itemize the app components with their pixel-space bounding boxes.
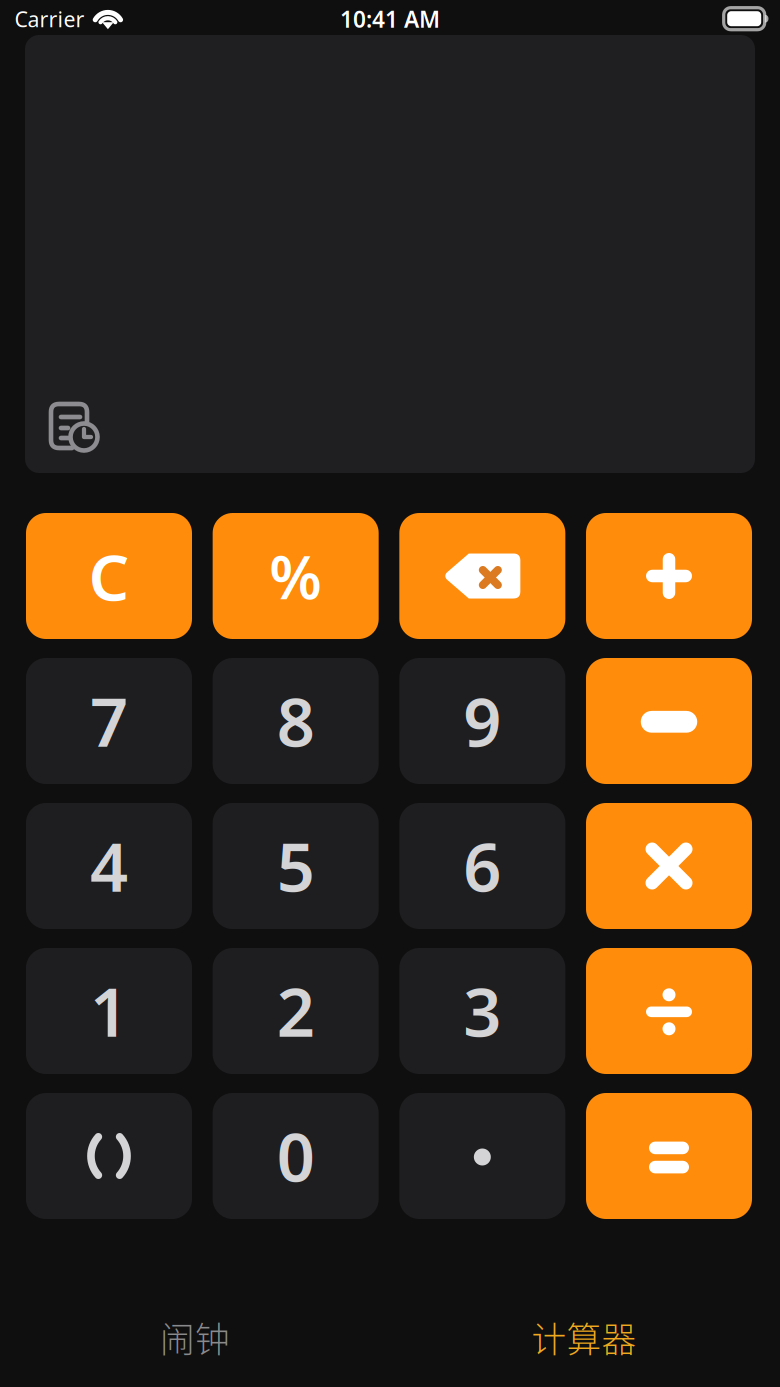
button[interactable]: History bbox=[40, 393, 108, 461]
button[interactable]: Equals bbox=[586, 1093, 752, 1219]
staticText: 2 bbox=[277, 967, 315, 1055]
button[interactable]: 5 bbox=[213, 803, 379, 929]
button[interactable]: 7 bbox=[26, 658, 192, 784]
button[interactable]: 3 bbox=[399, 948, 565, 1074]
staticText: 8 bbox=[277, 677, 315, 765]
button[interactable]: 闹钟 bbox=[0, 1282, 390, 1387]
staticText: 计算器 bbox=[531, 1312, 636, 1363]
staticText: 9 bbox=[463, 677, 501, 765]
button[interactable]: Decimal point bbox=[399, 1093, 565, 1219]
staticText: 5 bbox=[277, 822, 315, 910]
staticText: 3 bbox=[463, 967, 501, 1055]
staticText: 1 bbox=[90, 967, 128, 1055]
button[interactable]: Multiply bbox=[586, 803, 752, 929]
button[interactable]: Subtract bbox=[586, 658, 752, 784]
staticText: 4 bbox=[90, 822, 128, 910]
button[interactable]: Add bbox=[586, 513, 752, 639]
staticText: 0 bbox=[277, 1112, 315, 1200]
button[interactable]: Delete bbox=[399, 513, 565, 639]
button[interactable]: 9 bbox=[399, 658, 565, 784]
staticText: 10:41 AM bbox=[340, 4, 440, 34]
button[interactable]: Percent bbox=[213, 513, 379, 639]
button[interactable]: 6 bbox=[399, 803, 565, 929]
button[interactable]: 4 bbox=[26, 803, 192, 929]
button[interactable]: 1 bbox=[26, 948, 192, 1074]
staticText: Carrier bbox=[14, 5, 84, 33]
staticText: % bbox=[269, 536, 322, 616]
button[interactable]: 计算器 bbox=[389, 1282, 779, 1387]
staticText: 闹钟 bbox=[160, 1312, 230, 1363]
button[interactable]: 8 bbox=[213, 658, 379, 784]
staticText: C bbox=[88, 533, 129, 618]
staticText: 7 bbox=[90, 677, 128, 765]
staticText: 6 bbox=[463, 822, 501, 910]
button[interactable]: Divide bbox=[586, 948, 752, 1074]
button[interactable]: Clear bbox=[26, 513, 192, 639]
button[interactable]: 0 bbox=[213, 1093, 379, 1219]
button[interactable]: 2 bbox=[213, 948, 379, 1074]
button[interactable]: Parentheses bbox=[26, 1093, 192, 1219]
